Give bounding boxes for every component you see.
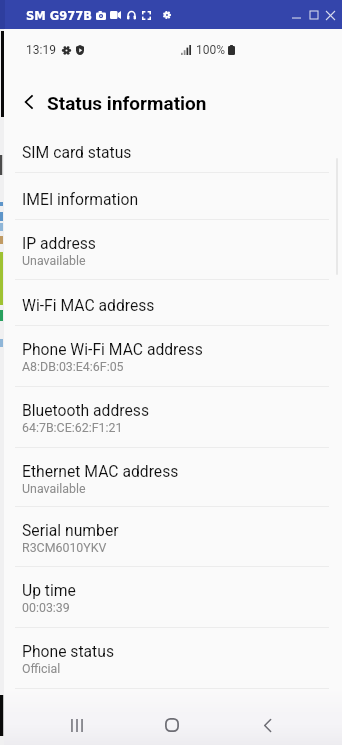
staticText: 00:03:39 (22, 600, 70, 615)
staticText: R3CM6010YKV (22, 540, 107, 555)
button[interactable]: SIM card status (0, 126, 342, 173)
staticText: A8:DB:03:E4:6F:05 (22, 359, 124, 374)
staticText: IMEI information (22, 190, 139, 208)
staticText: Official (22, 661, 61, 676)
staticText: Status information (47, 92, 207, 114)
staticText: Serial number (22, 521, 119, 539)
staticText: SM G977B (26, 9, 92, 22)
button[interactable]: Phone status (0, 628, 342, 689)
button[interactable]: Bluetooth address (0, 387, 342, 448)
staticText: Phone Wi-Fi MAC address (22, 340, 203, 358)
button[interactable]: Record screen (106, 5, 124, 25)
staticText: SIM card status (22, 143, 132, 161)
button[interactable]: Back (247, 705, 287, 745)
button[interactable]: IP address (0, 220, 342, 280)
staticText: 13:19 (26, 43, 56, 57)
button[interactable]: Ethernet MAC address (0, 448, 342, 507)
staticText: Unavailable (22, 253, 86, 268)
button[interactable]: Up time (0, 567, 342, 628)
staticText: Unavailable (22, 481, 86, 496)
staticText: 100% (196, 43, 226, 57)
button[interactable]: Take screenshot (92, 5, 110, 25)
button[interactable]: Serial number (0, 507, 342, 567)
staticText: 64:7B:CE:62:F1:21 (22, 420, 123, 435)
staticText: Ethernet MAC address (22, 462, 179, 480)
staticText: Bluetooth address (22, 401, 150, 419)
button[interactable]: Maximize (305, 4, 322, 26)
button[interactable]: Wi-Fi MAC address (0, 280, 342, 326)
button[interactable]: Audio (122, 5, 140, 25)
button[interactable]: Home (152, 705, 192, 745)
staticText: Phone status (22, 642, 114, 660)
staticText: Wi-Fi MAC address (22, 296, 155, 314)
button[interactable]: Close (322, 4, 339, 26)
button[interactable]: Recent apps (57, 705, 97, 745)
button[interactable]: Settings (158, 5, 176, 25)
staticText: IP address (22, 234, 96, 252)
button[interactable]: Navigate up (17, 90, 41, 114)
button[interactable]: Toggle full screen (137, 5, 155, 25)
button[interactable]: Phone Wi-Fi MAC address (0, 326, 342, 387)
button[interactable]: Minimize (288, 4, 305, 26)
staticText: Up time (22, 581, 76, 599)
button[interactable]: IMEI information (0, 173, 342, 220)
